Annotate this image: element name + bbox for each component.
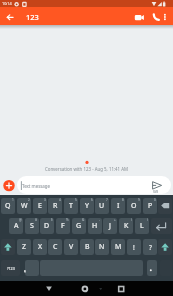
button[interactable] [4, 11, 16, 23]
button[interactable] [1, 239, 15, 255]
staticText: Q [5, 201, 11, 211]
button[interactable]: F [56, 218, 70, 234]
staticText: & [82, 218, 85, 222]
staticText: X [38, 242, 43, 252]
staticText: U [99, 201, 105, 211]
button[interactable]: W [17, 198, 31, 214]
button[interactable]: U [95, 198, 109, 214]
staticText: $ [51, 218, 53, 222]
staticText: ) [147, 218, 148, 222]
staticText: F [61, 221, 65, 231]
button[interactable]: Z [17, 239, 31, 255]
button[interactable] [25, 260, 39, 276]
button[interactable] [158, 198, 172, 214]
button[interactable] [110, 281, 132, 296]
button[interactable] [147, 260, 157, 276]
button[interactable]: T [64, 198, 78, 214]
staticText: 5 [75, 198, 77, 202]
button[interactable] [132, 11, 145, 23]
button[interactable]: G [72, 218, 86, 234]
staticText: D [44, 221, 50, 231]
staticText: Text message [22, 183, 50, 189]
staticText: ! [133, 243, 135, 252]
staticText: SMS [153, 190, 159, 194]
staticText: H [92, 221, 98, 231]
staticText: S [30, 221, 34, 231]
button[interactable]: R [48, 198, 62, 214]
button[interactable]: S [25, 218, 39, 234]
staticText: A [14, 221, 19, 231]
button[interactable]: L [135, 218, 149, 234]
button[interactable] [161, 11, 171, 23]
staticText: 0 [154, 198, 156, 202]
button[interactable]: D [40, 218, 54, 234]
button[interactable]: O [127, 198, 141, 214]
button[interactable]: P [143, 198, 157, 214]
button[interactable]: K [119, 218, 133, 234]
button[interactable]: B [80, 239, 94, 255]
staticText: # [35, 218, 38, 222]
staticText: O [131, 201, 137, 211]
staticText: W [21, 201, 28, 211]
staticText: J [109, 221, 111, 231]
button[interactable]: H [88, 218, 102, 234]
staticText: 6 [91, 198, 93, 202]
staticText: B [85, 242, 90, 252]
staticText: 1 [12, 198, 14, 202]
staticText: Y [85, 201, 89, 211]
staticText: 2 [28, 198, 30, 202]
button[interactable]: E [33, 198, 47, 214]
button[interactable]: N [95, 239, 109, 255]
button[interactable]: J [103, 218, 117, 234]
button[interactable] [38, 281, 60, 296]
staticText: C [53, 242, 58, 252]
button[interactable]: V [64, 239, 78, 255]
staticText: Conversation with 123 - Aug 5, 11:41 AM [0, 166, 173, 172]
button[interactable] [74, 281, 96, 296]
staticText: 3 [44, 198, 46, 202]
staticText: M [115, 242, 122, 252]
staticText: 9 [138, 198, 140, 202]
button[interactable] [148, 178, 166, 194]
staticText: + [114, 218, 116, 222]
staticText: ? [149, 243, 152, 252]
staticText: 10:14 [2, 1, 12, 6]
button[interactable]: ? [143, 239, 157, 255]
button[interactable] [147, 11, 160, 23]
staticText: T [69, 201, 73, 211]
button[interactable] [17, 176, 171, 194]
button[interactable] [151, 218, 172, 234]
button[interactable] [158, 239, 172, 255]
button[interactable]: Y [80, 198, 94, 214]
staticText: 7 [106, 198, 108, 202]
staticText: 8 [122, 198, 124, 202]
staticText: 123 [26, 12, 39, 22]
staticText: ( [131, 218, 132, 222]
staticText: K [124, 221, 129, 231]
staticText: 4 [59, 198, 61, 202]
button[interactable]: A [9, 218, 23, 234]
staticText: N [99, 242, 105, 252]
button[interactable]: Q [1, 198, 15, 214]
button[interactable]: X [33, 239, 47, 255]
staticText: @ [19, 218, 22, 222]
button[interactable] [2, 179, 16, 193]
staticText: I [117, 201, 120, 211]
button[interactable]: C [48, 239, 62, 255]
staticText: L [140, 221, 144, 231]
staticText: - [99, 218, 101, 222]
button[interactable]: I [111, 198, 125, 214]
staticText: R [53, 201, 58, 211]
button[interactable]: M [111, 239, 125, 255]
button[interactable]: ?123 [1, 260, 20, 276]
staticText: Z [22, 242, 27, 252]
staticText: V [69, 242, 74, 252]
staticText: P [148, 201, 153, 211]
staticText: E [38, 201, 42, 211]
staticText: % [66, 218, 69, 222]
staticText: ?123 [7, 266, 15, 271]
staticText: G [76, 221, 82, 231]
button[interactable]: ! [127, 239, 141, 255]
